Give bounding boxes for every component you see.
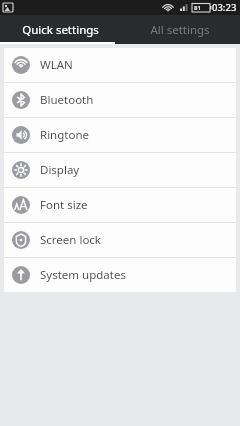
staticText: WLAN [40, 57, 73, 73]
staticText: 81 [194, 4, 201, 12]
staticText: Font size [40, 197, 88, 213]
button[interactable]: Screen lock [4, 223, 236, 257]
button[interactable]: Quick settings [0, 15, 120, 44]
staticText: Display [40, 162, 80, 178]
button[interactable]: Display [4, 153, 236, 187]
button[interactable]: WLAN [4, 48, 236, 82]
staticText: Quick settings [22, 22, 99, 38]
staticText: 03:23 [212, 1, 237, 14]
staticText: Bluetooth [40, 92, 94, 108]
button[interactable]: Font size [4, 188, 236, 222]
staticText: Ringtone [40, 127, 90, 143]
button[interactable]: All settings [120, 15, 240, 44]
staticText: Screen lock [40, 232, 102, 248]
button[interactable]: System updates [4, 258, 236, 292]
button[interactable]: Bluetooth [4, 83, 236, 117]
staticText: All settings [150, 22, 210, 38]
button[interactable]: Ringtone [4, 118, 236, 152]
staticText: System updates [40, 267, 126, 283]
